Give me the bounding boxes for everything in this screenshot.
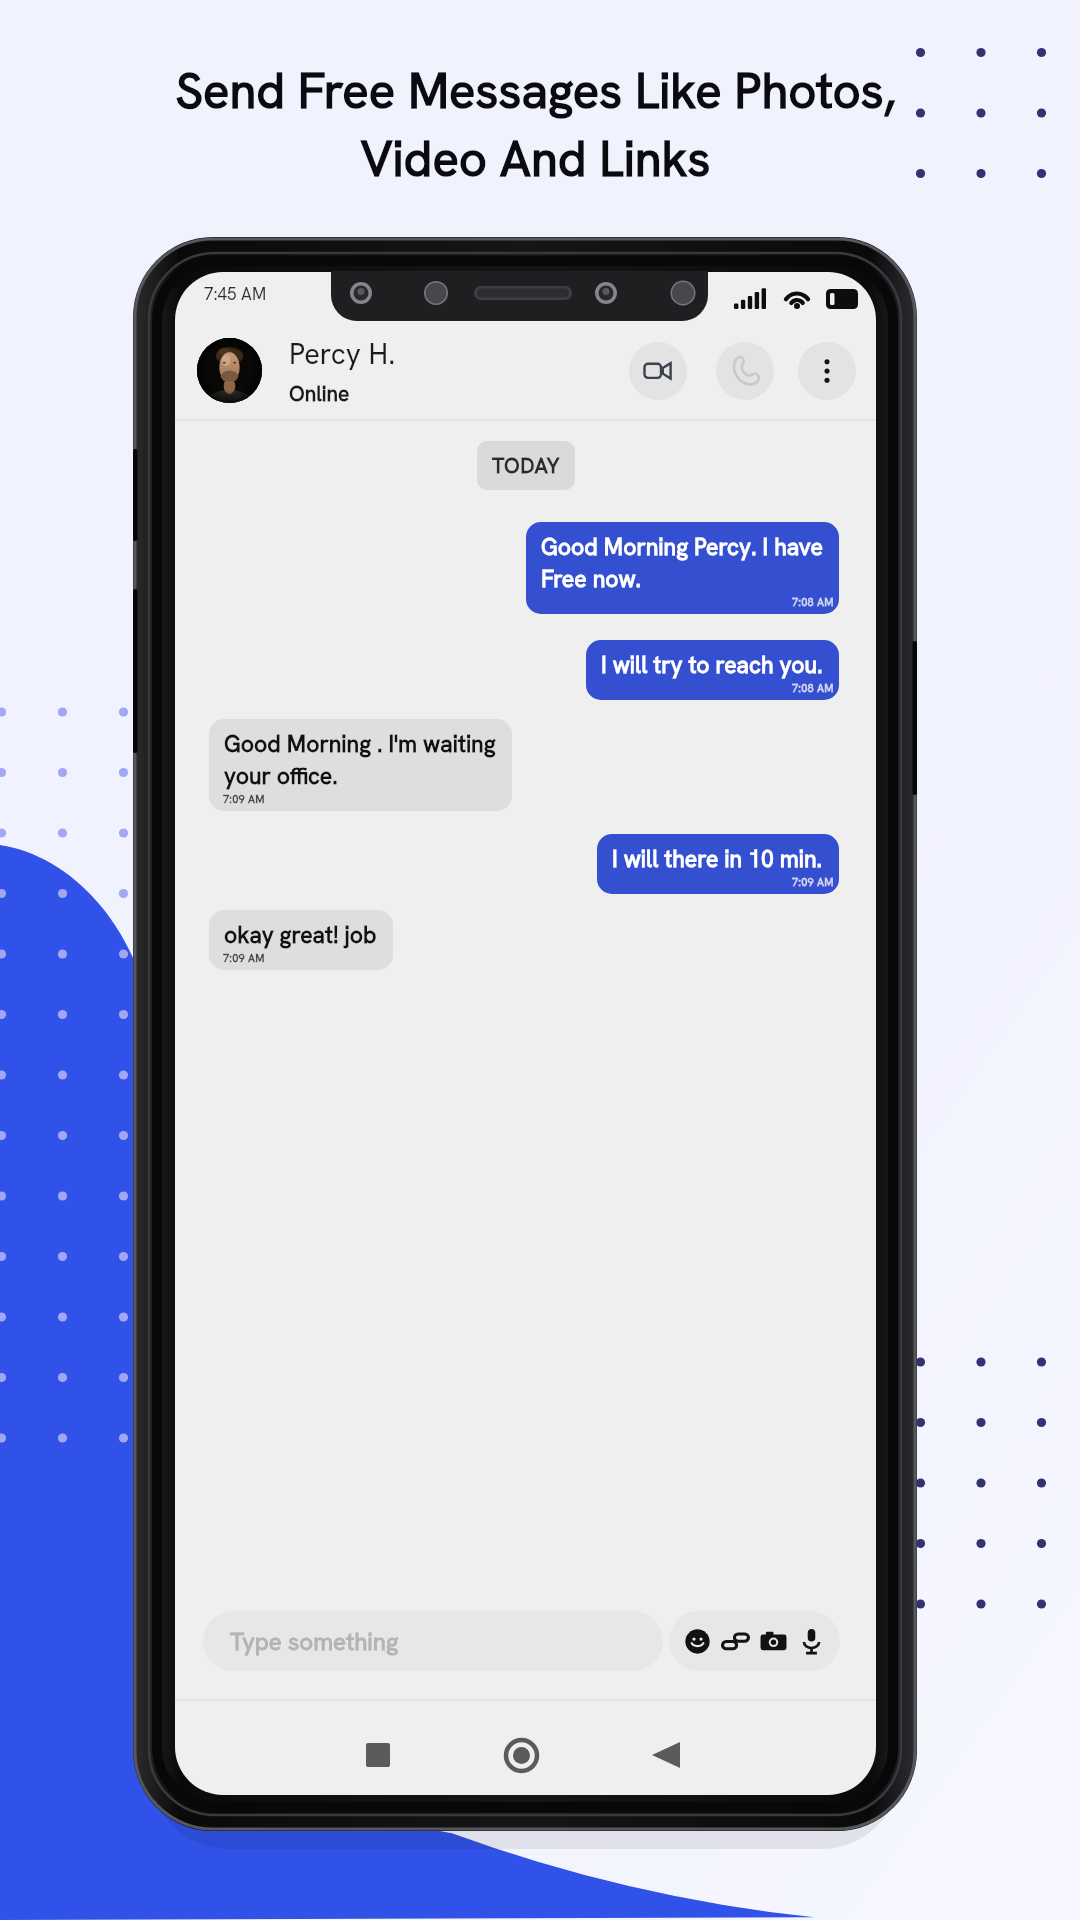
button[interactable]: Camera xyxy=(760,1628,787,1655)
button[interactable]: Good Morning . I'm waiting your office. xyxy=(209,719,512,811)
staticText: Online xyxy=(289,380,350,407)
button[interactable]: TODAY xyxy=(477,441,575,490)
staticText: Percy H. xyxy=(289,335,396,373)
button[interactable]: okay great! job xyxy=(209,910,393,970)
staticText: 7:09 AM xyxy=(223,792,265,806)
staticText: 7:09 AM xyxy=(223,951,265,965)
button[interactable]: Call xyxy=(716,342,774,400)
staticText: okay great! job xyxy=(224,920,377,950)
button[interactable]: Back xyxy=(633,1722,699,1788)
staticText: 7:09 AM xyxy=(792,875,834,889)
staticText: Good Morning . I'm waiting your office. xyxy=(224,729,496,791)
staticText: 7:45 AM xyxy=(204,283,267,305)
button[interactable]: I will there in 10 min. xyxy=(597,834,839,894)
staticText: I will there in 10 min. xyxy=(612,844,823,874)
staticText: 7:08 AM xyxy=(792,595,834,609)
staticText: I will try to reach you. xyxy=(601,650,823,680)
button[interactable]: Attach link xyxy=(722,1628,749,1655)
button[interactable]: I will try to reach you. xyxy=(586,640,839,700)
button[interactable]: Profile photo xyxy=(197,338,262,403)
staticText: Good Morning Percy. I have Free now. xyxy=(541,532,823,594)
staticText: Send Free Messages Like Photos, Video An… xyxy=(175,59,896,191)
staticText: 7:08 AM xyxy=(792,681,834,695)
button[interactable]: Good Morning Percy. I have Free now. xyxy=(526,522,839,614)
button[interactable]: Type something xyxy=(203,1611,663,1671)
button[interactable]: Emoji xyxy=(684,1628,711,1655)
staticText: Type something xyxy=(230,1626,399,1657)
staticText: TODAY xyxy=(492,452,560,479)
button[interactable]: Recents xyxy=(345,1722,411,1788)
button[interactable]: Video call xyxy=(629,342,687,400)
button[interactable]: Voice message xyxy=(798,1628,825,1655)
button[interactable]: More options xyxy=(798,342,856,400)
button[interactable]: Home xyxy=(488,1722,554,1788)
